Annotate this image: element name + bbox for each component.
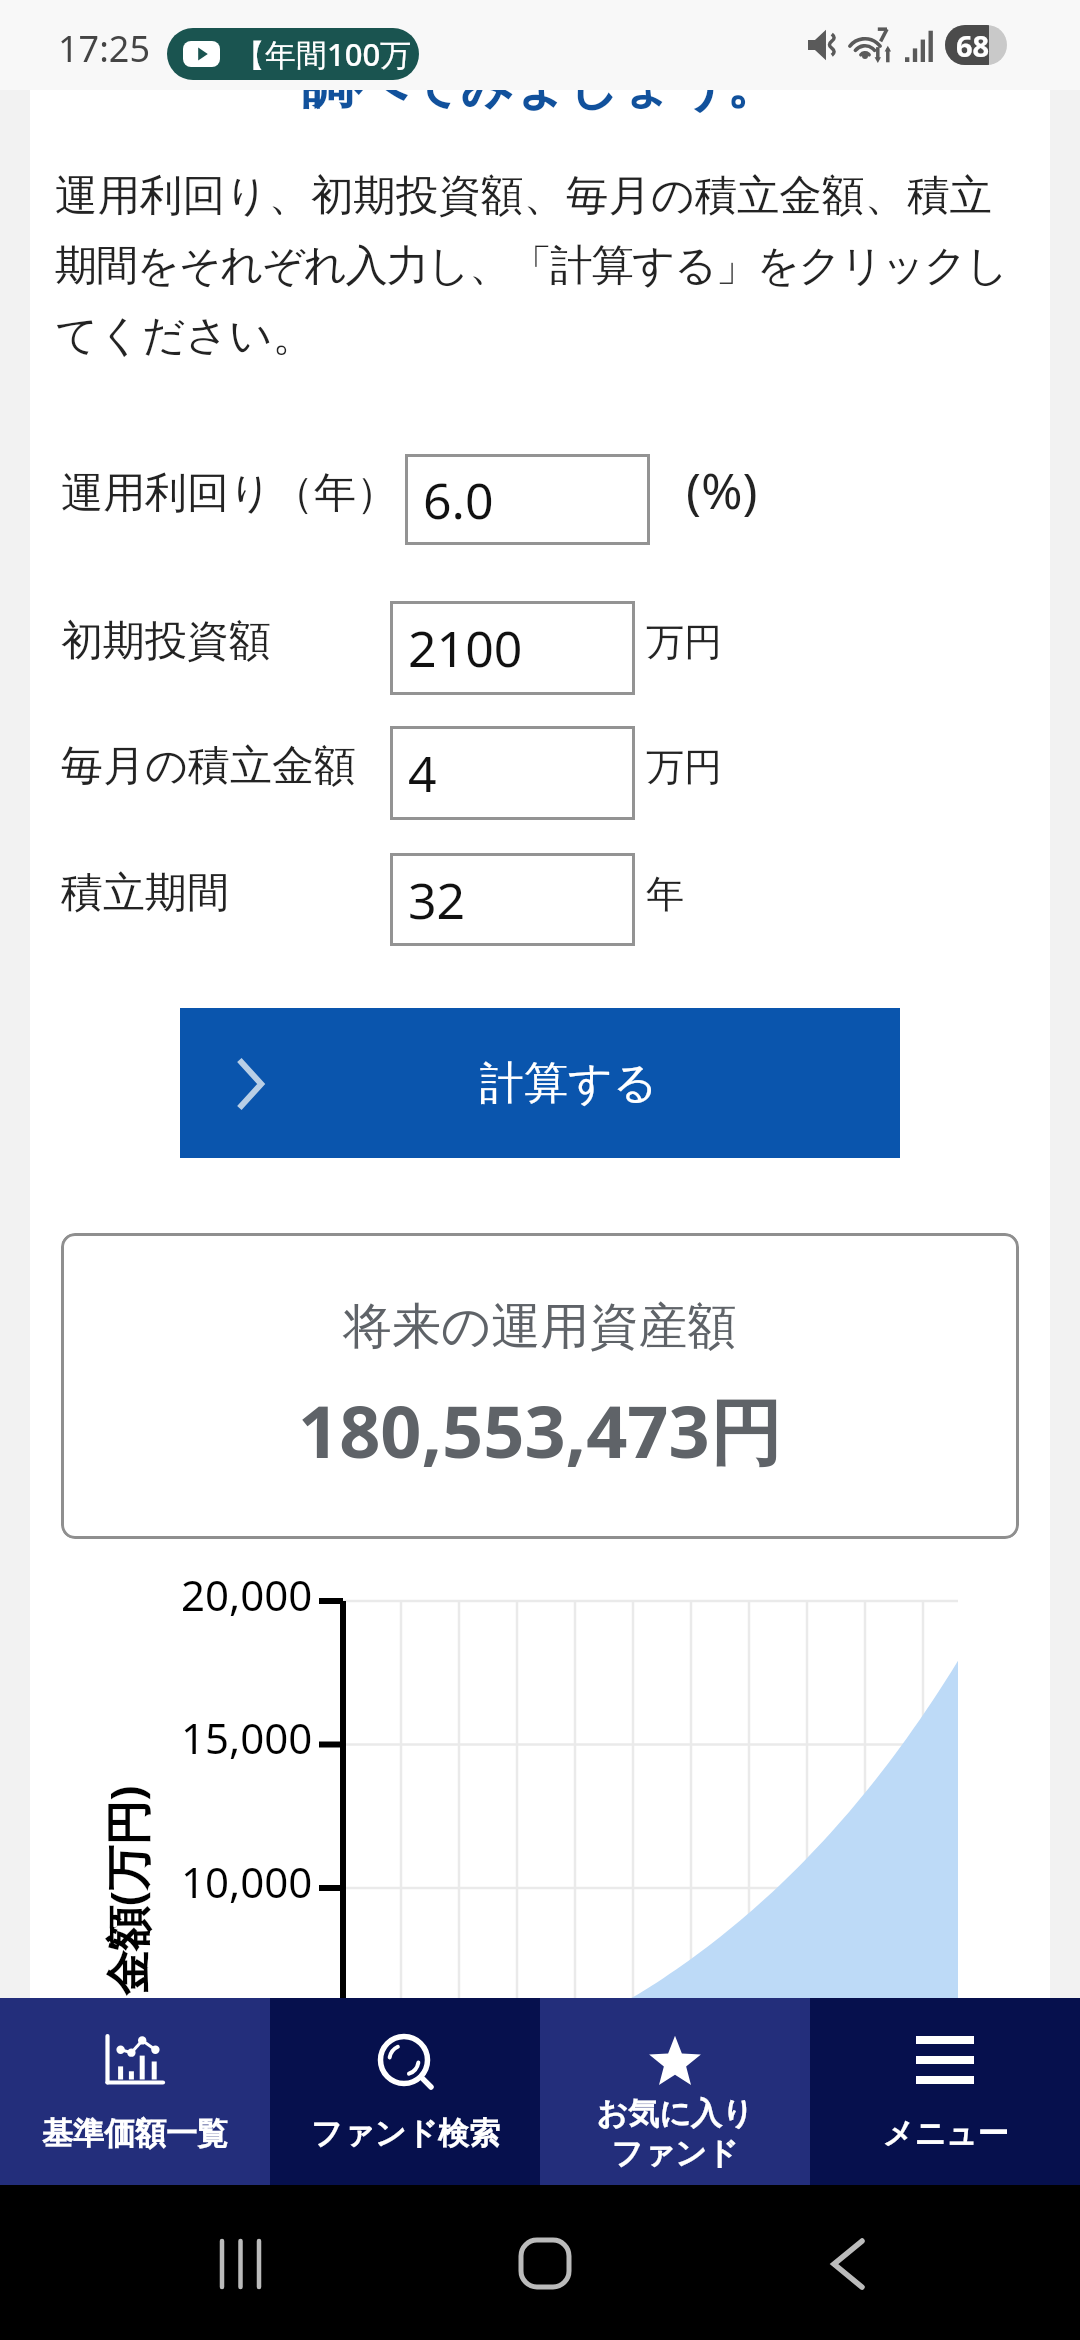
staticText: 初期投資額 xyxy=(61,615,271,668)
staticText: 調べてみましょう。 xyxy=(30,90,1050,119)
other: ファンド検索 xyxy=(379,2036,431,2088)
staticText: てください。 xyxy=(55,309,315,363)
other: メニュー xyxy=(916,2036,974,2084)
staticText: 毎月の積立金額 xyxy=(61,740,356,793)
button[interactable]: 初期投資額 xyxy=(390,601,635,695)
staticText: 2100 xyxy=(408,614,523,682)
other: Home xyxy=(519,2239,571,2289)
staticText: ファンド検索 xyxy=(311,2114,500,2153)
staticText: 6.0 xyxy=(423,466,494,534)
button[interactable]: ファンド検索 xyxy=(270,1998,540,2185)
staticText: (%) xyxy=(686,456,758,524)
staticText: 積立期間 xyxy=(61,867,229,920)
other: Wi-Fi xyxy=(853,27,893,63)
staticText: 20,000 xyxy=(181,1566,313,1623)
staticText: 10,000 xyxy=(181,1853,313,1910)
staticText: 運用利回り（年） xyxy=(61,467,398,520)
staticText: 32 xyxy=(408,866,466,934)
staticText: 68 xyxy=(956,26,990,65)
staticText: 金額(万円) xyxy=(95,1785,155,1996)
button[interactable]: 運用利回り（年） xyxy=(405,454,650,545)
staticText: 基準価額一覧 xyxy=(42,2114,228,2153)
staticText: お気に入り ファンド xyxy=(596,2094,754,2173)
other: Silent xyxy=(808,29,837,61)
staticText: 万円 xyxy=(646,618,722,666)
staticText: メニュー xyxy=(882,2114,1009,2153)
staticText: 期間をそれぞれ入力し、「計算する」をクリックし xyxy=(55,239,1008,293)
button[interactable]: 【年間100万 xyxy=(167,28,419,80)
staticText: 将来の運用資産額 xyxy=(343,1296,737,1358)
staticText: 180,553,473円 xyxy=(298,1381,782,1479)
button[interactable]: 毎月の積立金額 xyxy=(390,726,635,820)
staticText: 4 xyxy=(408,739,437,807)
staticText: 15,000 xyxy=(181,1709,313,1766)
other: 基準価額一覧 xyxy=(105,2036,165,2085)
staticText: 運用利回り、初期投資額、毎月の積立金額、積立 xyxy=(55,169,992,223)
staticText: 【年間100万 xyxy=(234,33,412,75)
button[interactable]: 積立期間 xyxy=(390,853,635,946)
staticText: 17:25 xyxy=(58,24,151,73)
button[interactable]: 基準価額一覧 xyxy=(0,1998,270,2185)
staticText: 万円 xyxy=(646,743,722,791)
other: Recents xyxy=(220,2240,262,2288)
other: お気に入りファンド xyxy=(650,2036,700,2086)
button[interactable]: お気に入りファンド xyxy=(540,1998,810,2185)
button[interactable]: 計算する xyxy=(180,1008,900,1158)
staticText: 年 xyxy=(646,870,684,918)
button[interactable]: メニュー xyxy=(810,1998,1080,2185)
other: Back xyxy=(831,2238,865,2290)
staticText: 計算する xyxy=(480,1056,659,1111)
